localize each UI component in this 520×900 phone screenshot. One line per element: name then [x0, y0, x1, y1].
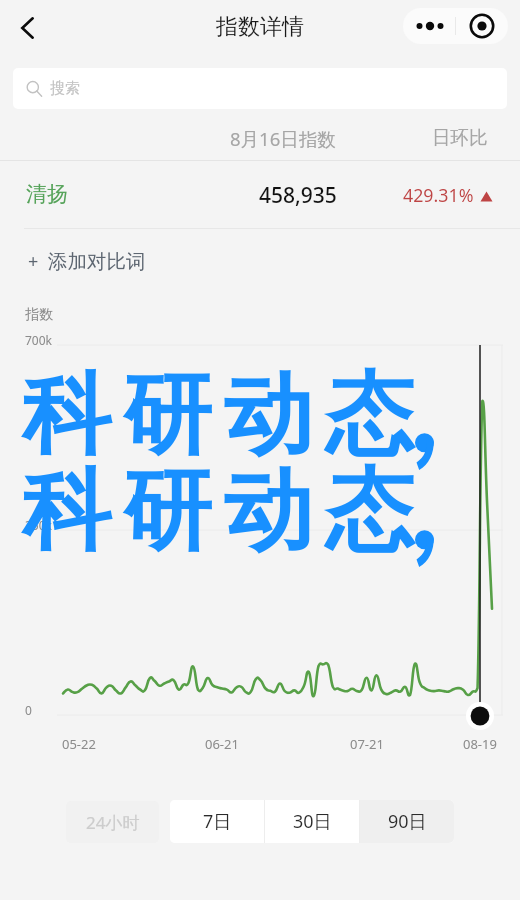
staticText: 0 — [25, 702, 32, 718]
staticText: 08-19 — [463, 735, 497, 753]
staticText: 清扬 — [26, 181, 68, 207]
staticText: 07-21 — [350, 735, 384, 753]
staticText: + — [28, 249, 39, 274]
staticText: 研 — [123, 455, 212, 567]
staticText: 8月16日指数 — [230, 126, 336, 151]
button[interactable]: 30日 — [265, 800, 359, 843]
staticText: 科 — [22, 359, 111, 471]
button[interactable]: 24小时 — [66, 801, 159, 843]
staticText: 动 — [224, 455, 313, 567]
staticText: 指数详情 — [216, 13, 304, 41]
staticText: 24小时 — [86, 811, 140, 834]
staticText: 30日 — [293, 809, 332, 834]
staticText: 动 — [224, 359, 313, 471]
staticText: 700k — [25, 332, 53, 348]
staticText: 90日 — [388, 809, 427, 834]
button[interactable]: 90日 — [360, 800, 454, 843]
staticText: 科 — [22, 455, 111, 567]
staticText: 05-22 — [62, 735, 96, 753]
staticText: 06-21 — [205, 735, 239, 753]
staticText: 搜索 — [50, 79, 80, 98]
staticText: 日环比 — [432, 126, 488, 149]
staticText: 添加对比词 — [48, 249, 146, 274]
button[interactable]: + — [28, 246, 146, 276]
button[interactable]: 搜索 — [13, 68, 507, 109]
staticText: 态 — [325, 359, 414, 471]
staticText: 458,935 — [259, 181, 337, 210]
button[interactable]: 7日 — [170, 800, 264, 843]
button[interactable]: More options — [403, 8, 456, 44]
button[interactable]: Close — [456, 8, 508, 44]
staticText: 指数 — [25, 306, 53, 324]
button[interactable]: Back — [5, 6, 49, 50]
staticText: 研 — [123, 359, 212, 471]
staticText: 态 — [325, 455, 414, 567]
staticText: 429.31% — [403, 183, 474, 207]
staticText: 7日 — [203, 809, 232, 834]
staticText: 350k — [25, 517, 53, 533]
